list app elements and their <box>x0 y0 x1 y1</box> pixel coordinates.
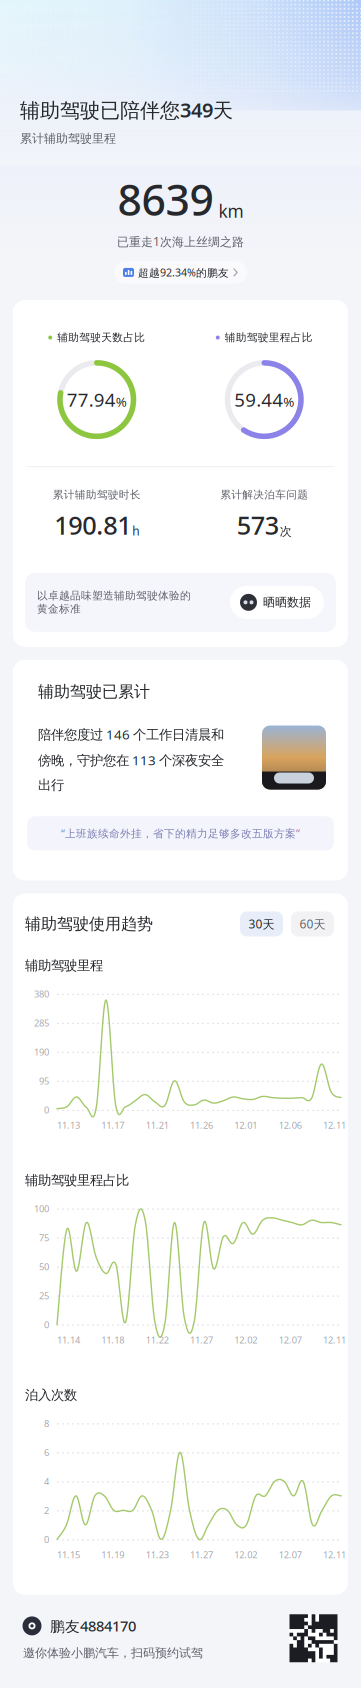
staticText: 50 <box>39 1260 49 1273</box>
staticText: 11.17 <box>101 1119 124 1131</box>
staticText: 12.02 <box>234 1334 257 1346</box>
staticText: 380 <box>34 988 49 1000</box>
staticText: 12.02 <box>234 1548 257 1561</box>
staticText: 4 <box>44 1475 49 1488</box>
staticText: 辅助驾驶里程占比 <box>225 331 313 344</box>
button[interactable]: 超越92.34%的鹏友 <box>114 261 247 284</box>
staticText: % <box>283 393 294 410</box>
staticText: 77.94 <box>67 387 116 412</box>
staticText: 12.07 <box>279 1548 302 1561</box>
staticText: 12.06 <box>279 1119 302 1131</box>
staticText: 次 <box>280 524 292 539</box>
staticText: 12.11 <box>323 1334 346 1346</box>
staticText: 11.15 <box>57 1548 80 1561</box>
staticText: 285 <box>34 1017 49 1029</box>
staticText: 已重走1次海上丝绸之路 <box>117 233 244 249</box>
staticText: 邀你体验小鹏汽车，扫码预约试驾 <box>23 1646 203 1660</box>
staticText: 辅助驾驶已陪伴您349天 <box>20 96 233 123</box>
staticText: km <box>218 199 243 222</box>
staticText: 8639 <box>117 171 213 227</box>
staticText: 12.11 <box>323 1119 346 1131</box>
staticText: 0 <box>44 1533 49 1546</box>
staticText: 晒晒数据 <box>263 595 311 610</box>
staticText: 12.01 <box>234 1119 257 1131</box>
button[interactable]: 60天 <box>291 911 334 936</box>
staticText: 辅助驾驶天数占比 <box>57 331 145 344</box>
staticText: 12.07 <box>279 1334 302 1346</box>
staticText: 0 <box>44 1104 49 1116</box>
staticText: 11.21 <box>146 1119 169 1131</box>
staticText: 辅助驾驶已累计 <box>38 682 150 701</box>
staticText: 190 <box>34 1046 49 1058</box>
staticText: 573 <box>237 508 279 542</box>
staticText: 鹏友4884170 <box>50 1616 136 1636</box>
staticText: 累计辅助驾驶里程 <box>20 131 116 146</box>
staticText: 30天 <box>248 916 274 932</box>
staticText: 以卓越品味塑造辅助驾驶体验的黄金标准 <box>37 589 191 615</box>
staticText: 12.11 <box>323 1548 346 1561</box>
staticText: 11.27 <box>190 1334 213 1346</box>
staticText: 0 <box>44 1318 49 1331</box>
staticText: 6 <box>44 1446 49 1459</box>
staticText: 11.19 <box>101 1548 124 1561</box>
staticText: 11.26 <box>190 1119 213 1131</box>
staticText: 累计辅助驾驶时长 <box>53 488 141 501</box>
staticText: % <box>116 393 127 410</box>
staticText: 25 <box>39 1289 49 1302</box>
staticText: 95 <box>39 1075 49 1087</box>
button[interactable]: 30天 <box>240 911 283 936</box>
staticText: 11.18 <box>101 1334 124 1346</box>
staticText: 辅助驾驶里程 <box>25 957 103 974</box>
staticText: 60天 <box>299 916 325 932</box>
staticText: 超越92.34%的鹏友 <box>138 265 229 280</box>
staticText: 11.14 <box>57 1334 80 1346</box>
staticText: 190.81 <box>54 508 131 542</box>
staticText: 辅助驾驶里程占比 <box>25 1172 129 1189</box>
staticText: 2 <box>44 1504 49 1517</box>
staticText: 辅助驾驶使用趋势 <box>25 914 153 934</box>
staticText: 11.22 <box>146 1334 169 1346</box>
staticText: 泊入次数 <box>25 1387 77 1403</box>
staticText: 100 <box>34 1202 49 1215</box>
staticText: 11.13 <box>57 1119 80 1131</box>
staticText: h <box>132 523 139 539</box>
staticText: 59.44 <box>234 387 283 412</box>
staticText: 陪伴您度过 146 个工作日清晨和傍晚，守护您在 113 个深夜安全出行 <box>38 725 224 793</box>
staticText: 累计解决泊车问题 <box>220 488 308 501</box>
staticText: 8 <box>44 1417 49 1430</box>
staticText: 11.23 <box>146 1548 169 1561</box>
staticText: “上班族续命外挂，省下的精力足够多改五版方案” <box>61 826 300 840</box>
staticText: 11.27 <box>190 1548 213 1561</box>
staticText: 75 <box>39 1231 49 1244</box>
button[interactable]: 晒晒数据 <box>230 586 324 619</box>
